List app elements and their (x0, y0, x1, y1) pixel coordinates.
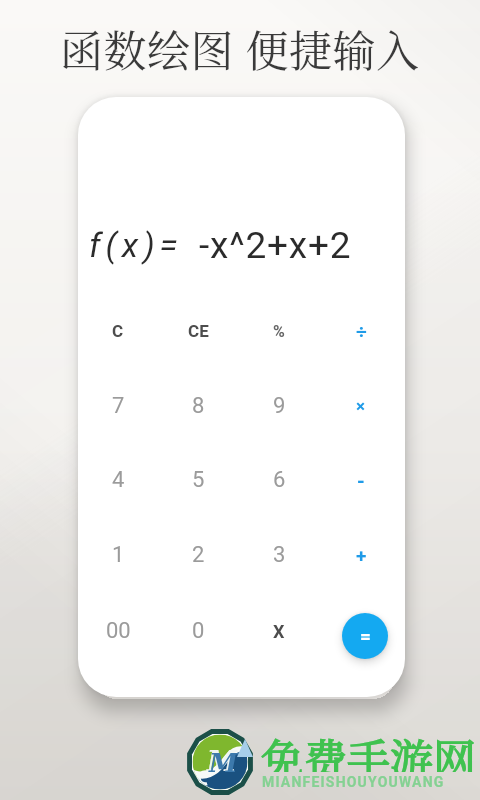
staticText: 6 (273, 467, 286, 493)
staticText: 1 (112, 542, 125, 568)
button[interactable]: 0 (166, 605, 230, 657)
button[interactable]: 00 (86, 605, 150, 657)
button[interactable]: + (329, 529, 393, 581)
staticText: 5 (192, 467, 205, 493)
button[interactable]: C (86, 305, 150, 357)
staticText: ÷ (356, 320, 367, 342)
button[interactable]: 4 (86, 454, 150, 506)
staticText: 7 (112, 393, 125, 419)
staticText: CE (188, 321, 209, 341)
button[interactable]: % (247, 305, 311, 357)
button[interactable]: 8 (166, 380, 230, 432)
staticText: 0 (192, 618, 205, 644)
button[interactable]: ÷ (329, 305, 393, 357)
staticText: 2 (192, 542, 205, 568)
staticText: MIANFEISHOUYOUWANG (262, 774, 445, 790)
button[interactable]: × (329, 380, 393, 432)
staticText: - (357, 469, 365, 492)
staticText: + (356, 544, 367, 566)
button[interactable]: CE (166, 305, 230, 357)
staticText: 00 (106, 618, 131, 644)
staticText: % (273, 322, 285, 341)
button[interactable]: 5 (166, 454, 230, 506)
staticText: M (209, 748, 238, 779)
staticText: 免费手游网 (261, 727, 476, 772)
button[interactable]: X (247, 605, 311, 657)
staticText: X (273, 621, 285, 642)
staticText: C (112, 321, 124, 341)
staticText: 9 (273, 393, 286, 419)
button[interactable]: 6 (247, 454, 311, 506)
staticText: -x^2+x+2 (199, 224, 352, 267)
button[interactable]: 2 (166, 529, 230, 581)
button[interactable]: - (329, 454, 393, 506)
button[interactable]: 9 (247, 380, 311, 432)
button[interactable]: 3 (247, 529, 311, 581)
staticText: × (356, 396, 366, 416)
staticText: 函数绘图 便捷输入 (60, 18, 420, 80)
button[interactable]: 1 (86, 529, 150, 581)
button[interactable]: = (342, 613, 388, 659)
staticText: 4 (112, 467, 125, 493)
button[interactable]: 7 (86, 380, 150, 432)
staticText: 3 (273, 542, 286, 568)
staticText: 8 (192, 393, 205, 419)
staticText: M (207, 746, 237, 778)
staticText: = (360, 625, 371, 647)
staticText: f(x)= (89, 225, 183, 265)
